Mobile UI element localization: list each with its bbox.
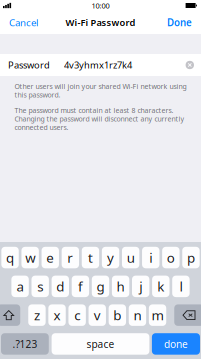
- button[interactable]: y: [102, 247, 119, 268]
- staticText: o: [167, 248, 175, 267]
- staticText: s: [37, 277, 43, 295]
- button[interactable]: v: [88, 304, 106, 326]
- staticText: w: [25, 248, 35, 267]
- button[interactable]: c: [68, 304, 86, 326]
- staticText: d: [56, 277, 64, 295]
- staticText: v: [94, 306, 101, 324]
- staticText: r: [67, 248, 73, 267]
- button[interactable]: f: [72, 276, 89, 297]
- button[interactable]: q: [1, 247, 19, 268]
- staticText: a: [17, 277, 24, 295]
- staticText: Password: [8, 59, 50, 71]
- button[interactable]: e: [41, 247, 59, 268]
- staticText: p: [187, 248, 195, 267]
- staticText: b: [113, 306, 121, 324]
- staticText: 10:00: [91, 0, 109, 11]
- button[interactable]: s: [31, 276, 49, 297]
- button[interactable]: z: [28, 304, 46, 326]
- button[interactable]: r: [62, 247, 79, 268]
- staticText: Done: [167, 16, 192, 29]
- button[interactable]: g: [92, 276, 109, 297]
- staticText: c: [74, 306, 80, 324]
- button[interactable]: n: [129, 304, 146, 326]
- button[interactable]: u: [122, 247, 139, 268]
- staticText: y: [107, 248, 114, 267]
- button[interactable]: Done: [158, 11, 201, 34]
- staticText: done: [164, 337, 188, 351]
- staticText: The password must contain at least 8 cha…: [14, 106, 184, 131]
- button[interactable]: p: [182, 247, 200, 268]
- button[interactable]: .?123: [1, 333, 49, 355]
- staticText: x: [53, 306, 60, 324]
- staticText: g: [96, 277, 104, 295]
- staticText: j: [139, 277, 142, 295]
- button[interactable]: space: [52, 333, 149, 355]
- button[interactable]: t: [82, 247, 99, 268]
- staticText: u: [127, 248, 135, 267]
- staticText: z: [34, 306, 40, 324]
- button[interactable]: done: [152, 333, 200, 355]
- button[interactable]: a: [11, 276, 29, 297]
- staticText: Cancel: [9, 16, 39, 29]
- staticText: h: [117, 277, 125, 295]
- staticText: q: [6, 248, 14, 267]
- staticText: t: [88, 248, 93, 267]
- button[interactable]: i: [142, 247, 159, 268]
- button[interactable]: m: [149, 304, 166, 326]
- button[interactable]: Delete: [174, 304, 201, 326]
- staticText: space: [86, 337, 114, 351]
- staticText: l: [179, 277, 182, 295]
- button[interactable]: w: [21, 247, 39, 268]
- staticText: Wi-Fi Password: [65, 16, 135, 29]
- staticText: i: [149, 248, 152, 267]
- button[interactable]: Shift: [0, 304, 20, 326]
- button[interactable]: b: [109, 304, 126, 326]
- staticText: 4v3yhmx1rz7k4: [64, 59, 132, 71]
- button[interactable]: d: [52, 276, 69, 297]
- button[interactable]: j: [132, 276, 149, 297]
- staticText: n: [133, 306, 141, 324]
- staticText: Other users will join your shared Wi-Fi …: [14, 82, 186, 99]
- button[interactable]: l: [172, 276, 190, 297]
- button[interactable]: Password: [0, 54, 201, 76]
- staticText: m: [151, 306, 163, 324]
- staticText: e: [46, 248, 54, 267]
- button[interactable]: x: [48, 304, 66, 326]
- staticText: k: [157, 277, 164, 295]
- button[interactable]: o: [162, 247, 179, 268]
- button[interactable]: h: [112, 276, 129, 297]
- button[interactable]: k: [152, 276, 169, 297]
- button[interactable]: Cancel: [0, 11, 48, 34]
- staticText: .?123: [12, 337, 37, 351]
- staticText: f: [78, 277, 83, 295]
